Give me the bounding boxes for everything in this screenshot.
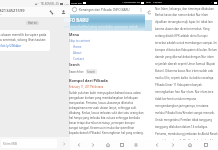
staticText: 1:05 bbox=[64, 2, 69, 5]
staticText: Hari ini bbox=[28, 21, 37, 25]
button[interactable]: Home bbox=[185, 140, 195, 150]
button[interactable]: Forward bbox=[168, 140, 178, 150]
button[interactable]: Skip to content bbox=[69, 38, 144, 44]
button[interactable]: Kirim SMS bbox=[1, 139, 57, 148]
button[interactable]: Call bbox=[46, 7, 56, 17]
staticText: Nur Irlam, keluarga, dan timnimya dilaku… bbox=[155, 7, 218, 140]
staticText: Informasi terkini yang membuka wawasan u… bbox=[64, 25, 139, 29]
button[interactable]: Forward bbox=[88, 140, 98, 150]
staticText: http://bit.ly/2lSkAor bbox=[0, 44, 22, 48]
staticText: 12:34 PM bbox=[71, 1, 82, 4]
staticText: 082134521599 bbox=[0, 8, 25, 13]
button[interactable]: Home bbox=[69, 44, 144, 50]
staticText: Skip to content bbox=[69, 39, 91, 43]
staticText: SMS bbox=[0, 13, 2, 16]
button[interactable]: Search bbox=[87, 69, 96, 74]
button[interactable]: Tabs bbox=[117, 140, 127, 150]
button[interactable]: More options bbox=[138, 7, 144, 13]
staticText: Search bbox=[87, 70, 96, 74]
staticText: February 11, 2017/Volintana bbox=[69, 85, 104, 89]
staticText: Sudah puluhan bukti menyugukan bahwa kas… bbox=[69, 91, 144, 135]
button[interactable]: Contact bbox=[69, 56, 144, 62]
staticText: 1:04 PM bbox=[153, 1, 162, 4]
staticText: ··· TELKOMSEL 4G bbox=[122, 1, 140, 4]
staticText: INFO BARU bbox=[64, 17, 89, 23]
staticText: Kenangan dari Pilkada: INFO BARU bbox=[79, 8, 130, 12]
button[interactable]: Menu bbox=[131, 140, 141, 150]
staticText: Contact bbox=[73, 57, 84, 61]
button[interactable]: Contact details bbox=[58, 7, 68, 17]
button[interactable]: Send bbox=[57, 137, 70, 150]
staticText: Kompol dari Pilkada bbox=[69, 78, 108, 83]
staticText: Search for: bbox=[69, 70, 85, 74]
staticText: ·· bbox=[211, 1, 213, 4]
staticText: Search bbox=[69, 63, 80, 67]
button[interactable]: Back bbox=[74, 140, 84, 150]
button[interactable]: About bbox=[69, 50, 144, 56]
staticText: About bbox=[73, 51, 82, 55]
staticText: ◆··· TELKOMSEL 4G bbox=[35, 2, 59, 6]
staticText: Inilah alasan memilih korupter pada 4 ka… bbox=[0, 33, 48, 42]
button[interactable]: Back bbox=[152, 140, 162, 150]
staticText: Kirim SMS bbox=[3, 142, 18, 146]
staticText: Home bbox=[73, 45, 82, 49]
staticText: 40% bbox=[146, 1, 151, 4]
staticText: Menu bbox=[69, 32, 80, 37]
button[interactable]: Reload bbox=[145, 8, 154, 17]
button[interactable]: Home bbox=[103, 140, 113, 150]
button[interactable]: Tabs bbox=[201, 140, 211, 150]
